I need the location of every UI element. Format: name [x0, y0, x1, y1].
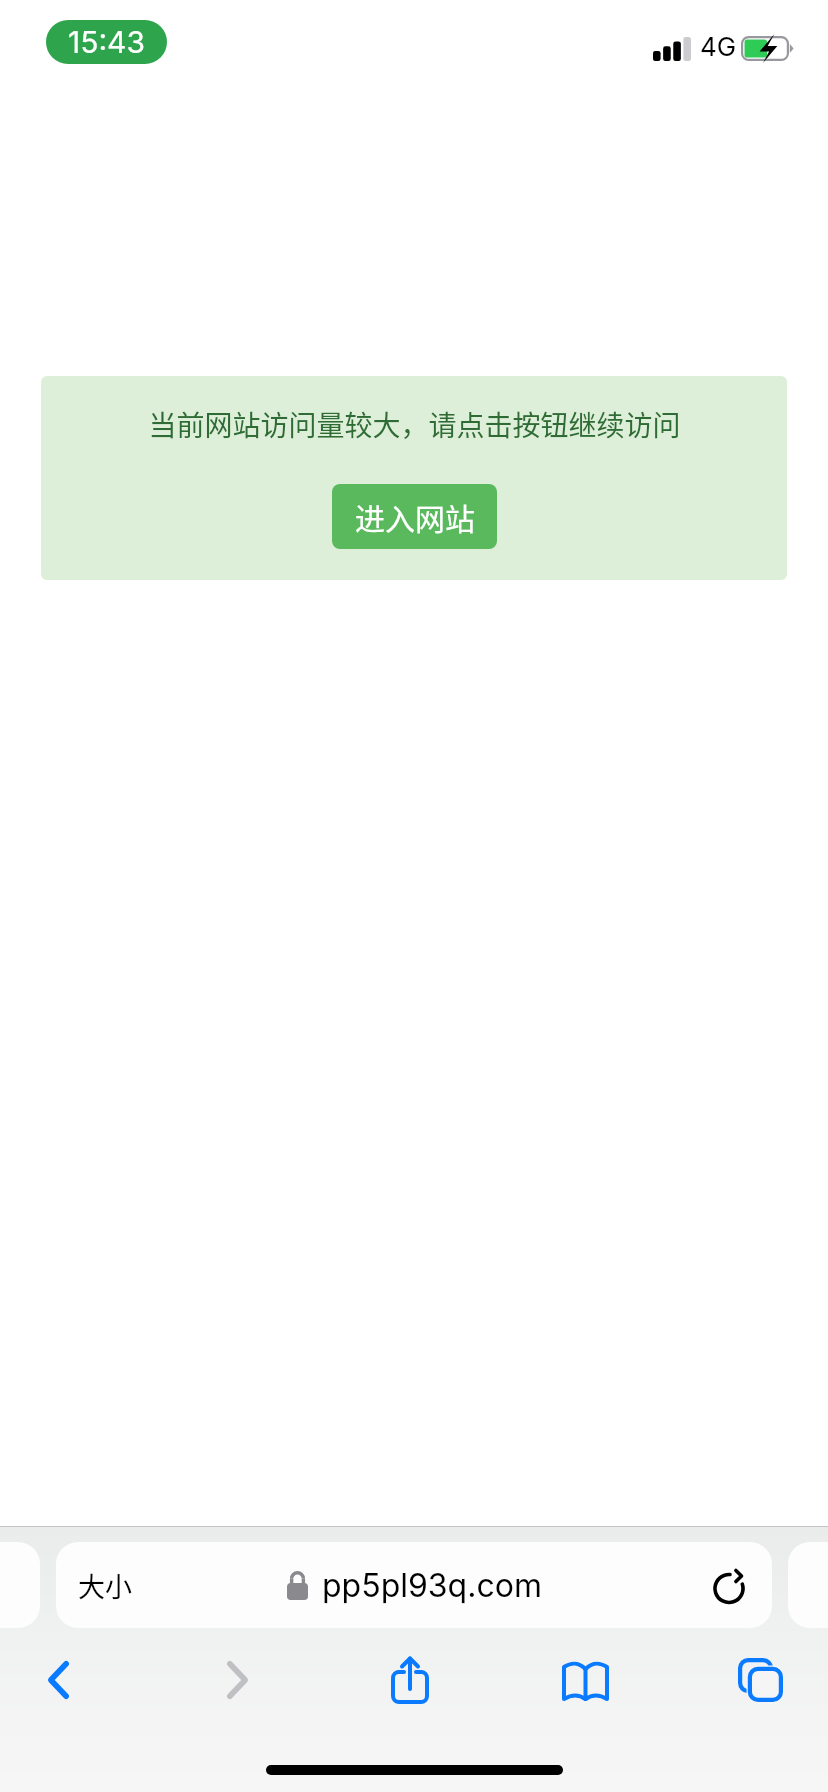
staticText: 当前网站访问量较大，请点击按钮继续访问 [148, 404, 681, 445]
button[interactable]: 大小 [56, 1560, 142, 1611]
button[interactable]: Bookmarks [543, 1638, 627, 1722]
staticText: pp5pl93q.com [322, 1566, 542, 1605]
staticText: 4G [700, 31, 737, 62]
button[interactable]: Reload [700, 1555, 760, 1615]
button[interactable]: Forward [195, 1638, 279, 1722]
staticText: 15:43 [68, 24, 145, 60]
button[interactable]: 进入网站 [332, 484, 497, 549]
button[interactable]: Tabs [718, 1638, 802, 1722]
button[interactable]: Back [16, 1638, 100, 1722]
button[interactable]: Share [368, 1638, 452, 1722]
staticText: 进入网站 [355, 495, 475, 538]
